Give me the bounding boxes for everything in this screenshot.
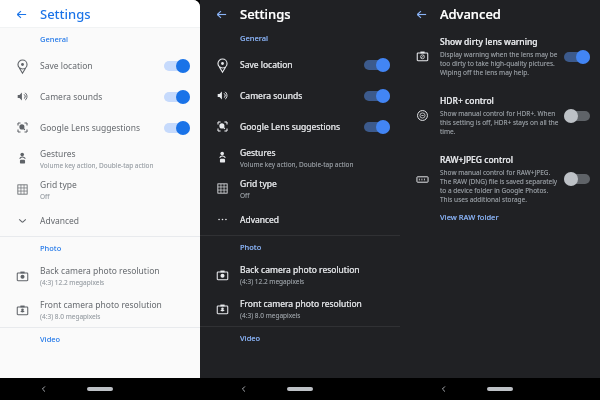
staticText: Advanced bbox=[240, 214, 280, 226]
staticText: General bbox=[240, 33, 269, 43]
button[interactable]: Back camera photo resolution bbox=[0, 259, 200, 293]
button[interactable] bbox=[364, 89, 390, 103]
button[interactable]: HDR+ control bbox=[400, 89, 600, 142]
staticText: View RAW folder bbox=[440, 212, 499, 222]
other: Gestures bbox=[215, 150, 230, 165]
staticText: Google Lens suggestions bbox=[240, 121, 341, 133]
staticText: RAW+JPEG control bbox=[440, 154, 514, 166]
button[interactable] bbox=[564, 109, 590, 123]
button[interactable] bbox=[164, 121, 190, 135]
staticText: Save location bbox=[40, 60, 93, 72]
button[interactable]: Home bbox=[287, 387, 313, 391]
button[interactable]: Back bbox=[410, 3, 432, 25]
staticText: Settings bbox=[240, 5, 291, 23]
staticText: General bbox=[40, 34, 69, 44]
staticText: Off bbox=[40, 192, 50, 201]
other: Back camera photo resolution bbox=[215, 268, 230, 283]
staticText: Advanced bbox=[440, 5, 501, 23]
staticText: Front camera photo resolution bbox=[40, 299, 162, 311]
other: Google Lens suggestions bbox=[15, 120, 30, 135]
button[interactable]: Google Lens suggestions bbox=[200, 111, 400, 142]
other: Show dirty lens warning bbox=[415, 49, 430, 64]
staticText: HDR+ control bbox=[440, 95, 494, 107]
button[interactable]: Advanced bbox=[0, 205, 200, 236]
staticText: Grid type bbox=[240, 178, 277, 190]
staticText: Google Lens suggestions bbox=[40, 122, 141, 134]
staticText: Photo bbox=[40, 243, 62, 253]
other: HDR+ control bbox=[415, 108, 430, 123]
staticText: Video bbox=[240, 333, 261, 343]
staticText: Back camera photo resolution bbox=[240, 264, 360, 276]
button[interactable] bbox=[564, 172, 590, 186]
staticText: (4:3) 12.2 megapixels bbox=[240, 277, 305, 286]
other: Save location bbox=[215, 57, 230, 72]
staticText: Gestures bbox=[40, 148, 76, 160]
button[interactable]: Home bbox=[487, 387, 513, 391]
button[interactable]: Front camera photo resolution bbox=[200, 292, 400, 326]
button[interactable]: Grid type bbox=[0, 174, 200, 205]
staticText: Grid type bbox=[40, 179, 77, 191]
button[interactable]: View RAW folder bbox=[400, 210, 600, 228]
staticText: Settings bbox=[40, 5, 91, 23]
other: Grid type bbox=[215, 181, 230, 196]
other: Grid type bbox=[15, 182, 30, 197]
button[interactable]: Advanced bbox=[200, 204, 400, 235]
staticText: Camera sounds bbox=[40, 91, 103, 103]
button[interactable]: Back bbox=[10, 3, 32, 25]
button[interactable] bbox=[364, 120, 390, 134]
other: Save location bbox=[15, 58, 30, 73]
other: RAW+JPEG control bbox=[415, 172, 430, 187]
other: Camera sounds bbox=[215, 88, 230, 103]
staticText: Camera sounds bbox=[240, 90, 303, 102]
staticText: Volume key action, Double-tap action bbox=[240, 160, 354, 169]
button[interactable]: Google Lens suggestions bbox=[0, 112, 200, 143]
button[interactable]: Back bbox=[236, 381, 252, 397]
other: Front camera photo resolution bbox=[215, 302, 230, 317]
other: Front camera photo resolution bbox=[15, 303, 30, 318]
staticText: Show dirty lens warning bbox=[440, 36, 538, 48]
button[interactable] bbox=[564, 50, 590, 64]
staticText: Show manual control for RAW+JPEG. The RA… bbox=[440, 168, 560, 204]
staticText: Advanced bbox=[40, 215, 80, 227]
staticText: (4:3) 8.0 megapixels bbox=[40, 312, 101, 321]
button[interactable]: Home bbox=[87, 387, 113, 391]
button[interactable]: Back bbox=[210, 3, 232, 25]
staticText: Photo bbox=[240, 242, 262, 252]
other: Gestures bbox=[15, 151, 30, 166]
button[interactable]: Camera sounds bbox=[200, 80, 400, 111]
staticText: Save location bbox=[240, 59, 293, 71]
other: Advanced bbox=[15, 213, 30, 228]
staticText: (4:3) 12.2 megapixels bbox=[40, 278, 105, 287]
other: Back camera photo resolution bbox=[15, 269, 30, 284]
staticText: Front camera photo resolution bbox=[240, 298, 362, 310]
button[interactable]: Show dirty lens warning bbox=[400, 30, 600, 83]
staticText: Gestures bbox=[240, 147, 276, 159]
button[interactable] bbox=[164, 90, 190, 104]
button[interactable]: Save location bbox=[200, 49, 400, 80]
staticText: Video bbox=[40, 334, 61, 344]
button[interactable]: Back camera photo resolution bbox=[200, 258, 400, 292]
other: Camera sounds bbox=[15, 89, 30, 104]
button[interactable]: Gestures bbox=[0, 143, 200, 174]
other: Advanced bbox=[215, 212, 230, 227]
button[interactable]: RAW+JPEG control bbox=[400, 148, 600, 210]
button[interactable]: Gestures bbox=[200, 142, 400, 173]
button[interactable]: Save location bbox=[0, 50, 200, 81]
staticText: Back camera photo resolution bbox=[40, 265, 160, 277]
button[interactable]: Back bbox=[436, 381, 452, 397]
button[interactable] bbox=[164, 59, 190, 73]
button[interactable]: Camera sounds bbox=[0, 81, 200, 112]
staticText: (4:3) 8.0 megapixels bbox=[240, 311, 301, 320]
staticText: Display warning when the lens may be too… bbox=[440, 50, 560, 77]
button[interactable] bbox=[364, 58, 390, 72]
other: Google Lens suggestions bbox=[215, 119, 230, 134]
staticText: Show manual control for HDR+. When this … bbox=[440, 109, 560, 136]
staticText: Volume key action, Double-tap action bbox=[40, 161, 154, 170]
staticText: Off bbox=[240, 191, 250, 200]
button[interactable]: Grid type bbox=[200, 173, 400, 204]
button[interactable]: Front camera photo resolution bbox=[0, 293, 200, 327]
button[interactable]: Back bbox=[36, 381, 52, 397]
